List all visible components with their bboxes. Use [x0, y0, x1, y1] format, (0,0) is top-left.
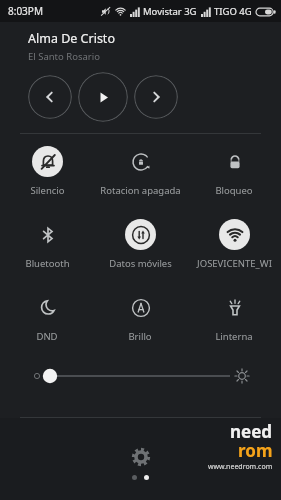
- button[interactable]: Bluetooth: [3, 217, 91, 272]
- staticText: Alma De Cristo: [28, 30, 115, 47]
- staticText: Linterna: [215, 330, 253, 343]
- staticText: Silencio: [30, 184, 65, 197]
- button[interactable]: Play: [78, 72, 128, 122]
- button[interactable]: Settings: [127, 443, 155, 471]
- staticText: JOSEVICENTE_WI: [197, 257, 272, 270]
- staticText: DND: [36, 330, 58, 343]
- staticText: Movistar 3G: [143, 5, 197, 18]
- button[interactable]: Bloqueo: [190, 144, 278, 199]
- button[interactable]: Rotacion apagada: [96, 144, 184, 199]
- button[interactable]: Datos móviles: [96, 217, 184, 272]
- button[interactable]: DND: [3, 290, 91, 345]
- button[interactable]: Brillo: [96, 290, 184, 345]
- staticText: 8:03PM: [8, 4, 43, 18]
- button[interactable]: Linterna: [190, 290, 278, 345]
- button[interactable]: Previous: [28, 75, 72, 119]
- staticText: Bluetooth: [25, 257, 70, 270]
- staticText: Bloqueo: [215, 184, 253, 197]
- button[interactable]: Silencio: [3, 144, 91, 199]
- staticText: El Santo Rosario: [28, 50, 100, 63]
- staticText: Datos móviles: [109, 257, 172, 270]
- staticText: rom: [238, 439, 273, 462]
- staticText: www.needrom.com: [208, 462, 273, 472]
- staticText: Brillo: [128, 330, 152, 343]
- staticText: TIGO 4G: [214, 5, 252, 18]
- staticText: Rotacion apagada: [100, 184, 181, 197]
- button[interactable]: JOSEVICENTE_WI: [190, 217, 278, 272]
- button[interactable]: Brightness: [0, 359, 281, 393]
- button[interactable]: Next: [134, 75, 178, 119]
- staticText: need: [230, 420, 273, 443]
